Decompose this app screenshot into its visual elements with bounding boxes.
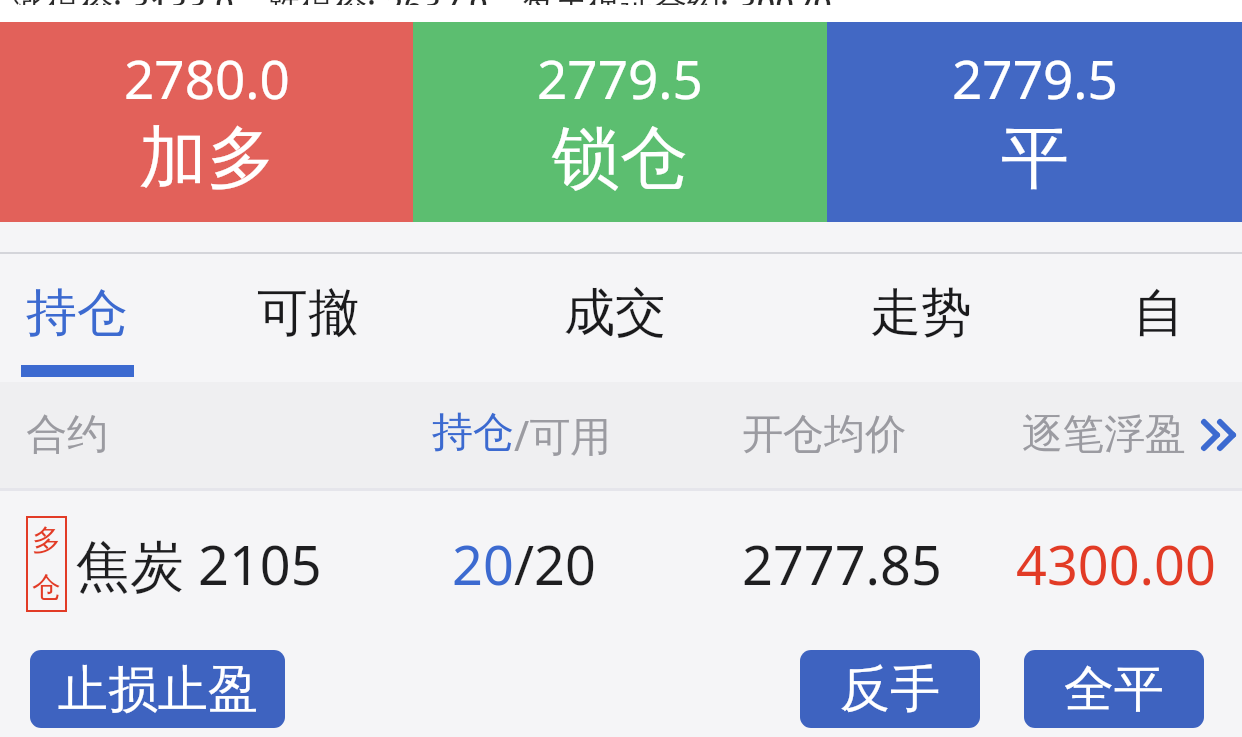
staticText: 逐笔浮盈 bbox=[1022, 409, 1186, 461]
staticText: 止损止盈 bbox=[58, 658, 258, 721]
staticText: 反手 bbox=[840, 658, 940, 721]
staticText: 合约 bbox=[26, 409, 108, 461]
staticText: 锁仓 bbox=[552, 116, 688, 202]
staticText: 4300.00 bbox=[1016, 527, 1216, 601]
button[interactable]: 持仓 bbox=[0, 254, 154, 380]
staticText: 20 bbox=[452, 527, 514, 601]
staticText: 全平 bbox=[1064, 658, 1164, 721]
staticText: 走势 bbox=[870, 281, 972, 345]
staticText: /20 bbox=[514, 527, 596, 601]
staticText: 2779.5 bbox=[537, 42, 703, 114]
staticText: 多 bbox=[32, 522, 61, 559]
button[interactable]: 2779.5 bbox=[827, 22, 1242, 222]
staticText: 自 bbox=[1133, 281, 1184, 345]
staticText: 可撤 bbox=[257, 281, 359, 345]
button[interactable]: 走势 bbox=[767, 254, 1075, 380]
staticText: 平 bbox=[1001, 116, 1069, 202]
staticText: 2777.85 bbox=[742, 527, 942, 601]
staticText: 焦炭 2105 bbox=[76, 527, 322, 601]
button[interactable]: 2780.0 bbox=[0, 22, 413, 222]
button[interactable]: 全平 bbox=[1024, 650, 1204, 728]
button[interactable]: 止损止盈 bbox=[30, 650, 285, 728]
button[interactable]: 2779.5 bbox=[413, 22, 827, 222]
staticText: 持仓 bbox=[26, 281, 128, 345]
staticText: 加多 bbox=[139, 116, 275, 202]
staticText: 成交 bbox=[564, 281, 666, 345]
staticText: 2780.0 bbox=[124, 42, 290, 114]
button[interactable]: More columns bbox=[1200, 414, 1242, 456]
button[interactable]: 多 bbox=[0, 491, 1242, 637]
staticText: 跌停价: 2637.0 bbox=[268, 0, 488, 5]
staticText: 2779.5 bbox=[952, 42, 1118, 114]
button[interactable]: 自 bbox=[1075, 254, 1242, 380]
staticText: 涨停价: 3133.0 bbox=[14, 0, 234, 5]
staticText: 开仓均价 bbox=[742, 409, 906, 461]
staticText: 每手保证金约: 30070 bbox=[522, 0, 832, 5]
staticText: 持仓 bbox=[432, 407, 514, 459]
button[interactable]: 反手 bbox=[800, 650, 980, 728]
button[interactable]: 可撤 bbox=[154, 254, 462, 380]
button[interactable]: 成交 bbox=[462, 254, 767, 380]
staticText: 仓 bbox=[32, 569, 61, 606]
staticText: /可用 bbox=[514, 407, 612, 463]
